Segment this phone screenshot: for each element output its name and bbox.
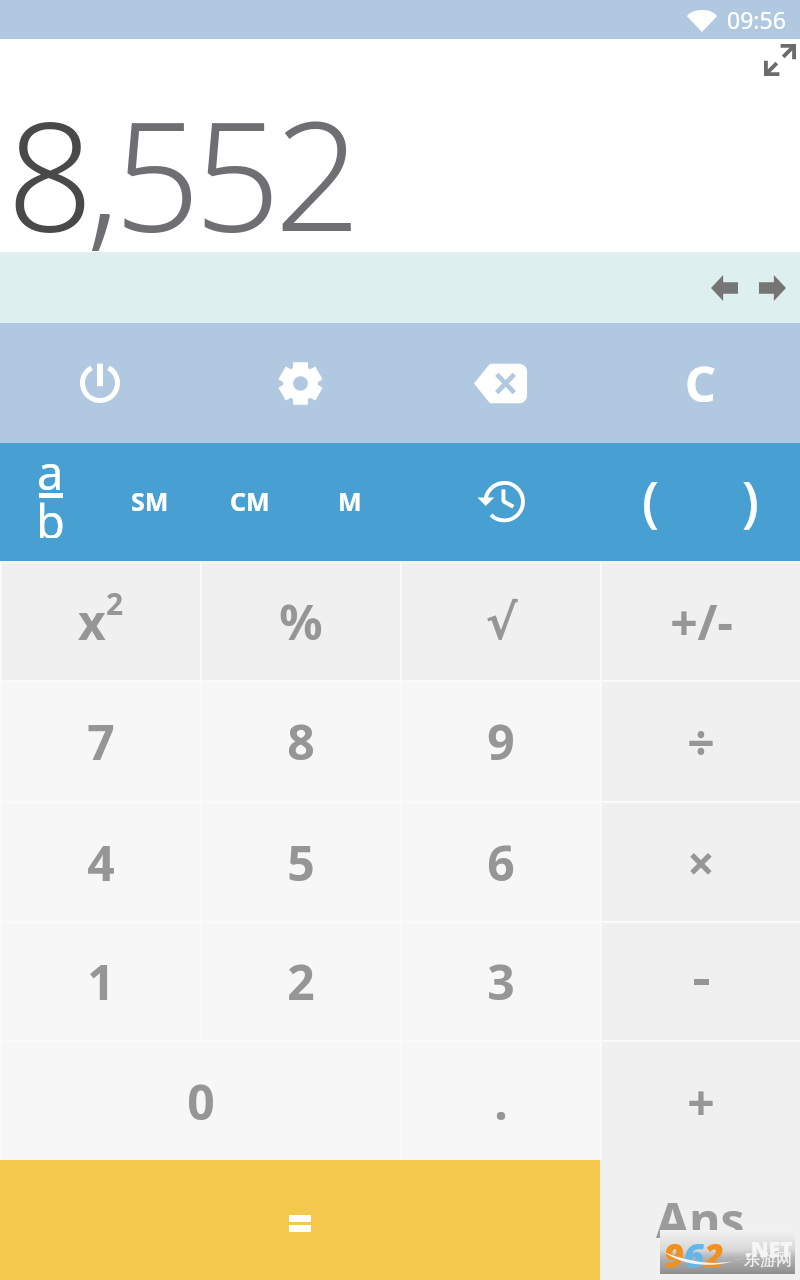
- staticText: M: [338, 484, 362, 518]
- button[interactable]: Equals: [0, 1160, 600, 1280]
- staticText: ×: [687, 830, 715, 895]
- button[interactable]: 4: [2, 803, 200, 921]
- staticText: 8: [7, 70, 86, 276]
- staticText: CM: [230, 484, 270, 518]
- button[interactable]: CM: [200, 443, 300, 561]
- staticText: (: [642, 463, 659, 537]
- button[interactable]: Expand: [756, 36, 800, 84]
- button[interactable]: 6: [402, 803, 600, 921]
- staticText: 4: [87, 830, 115, 895]
- staticText: 6: [487, 830, 515, 895]
- staticText: 3: [487, 949, 515, 1014]
- button[interactable]: √: [402, 563, 600, 680]
- staticText: 9: [664, 1232, 684, 1276]
- button[interactable]: Power: [0, 323, 200, 443]
- button[interactable]: +: [602, 1042, 800, 1160]
- button[interactable]: Move right: [746, 262, 798, 314]
- button[interactable]: ×: [602, 803, 800, 921]
- staticText: 9: [487, 709, 515, 774]
- staticText: √: [485, 594, 518, 650]
- button[interactable]: Open paren: [600, 443, 700, 561]
- staticText: ): [742, 463, 759, 537]
- staticText: 乐游网: [744, 1250, 792, 1270]
- button[interactable]: 8: [202, 682, 400, 801]
- staticText: C: [685, 351, 716, 416]
- staticText: 2: [704, 1232, 724, 1276]
- staticText: 6: [684, 1232, 704, 1276]
- staticText: .NET: [745, 1235, 793, 1264]
- button[interactable]: History: [450, 443, 550, 561]
- button[interactable]: Close paren: [700, 443, 800, 561]
- button[interactable]: M: [300, 443, 400, 561]
- button[interactable]: Clear: [600, 323, 800, 443]
- button[interactable]: 2: [202, 923, 400, 1040]
- staticText: .: [494, 1069, 508, 1134]
- staticText: 1: [87, 949, 115, 1014]
- staticText: +: [687, 1069, 715, 1134]
- staticText: 7: [87, 709, 115, 774]
- staticText: Ans: [656, 1187, 745, 1252]
- staticText: SM: [131, 484, 169, 518]
- button[interactable]: Minus: [602, 923, 800, 1040]
- staticText: %: [279, 589, 323, 654]
- button[interactable]: 5: [202, 803, 400, 921]
- button[interactable]: 0: [2, 1042, 400, 1160]
- staticText: 8: [287, 709, 315, 774]
- staticText: ,552: [86, 70, 355, 276]
- button[interactable]: +/-: [602, 563, 800, 680]
- staticText: 0: [187, 1069, 215, 1134]
- button[interactable]: x: [2, 563, 200, 680]
- button[interactable]: 1: [2, 923, 200, 1040]
- staticText: 2: [106, 583, 124, 624]
- button[interactable]: Settings: [200, 323, 400, 443]
- button[interactable]: .: [402, 1042, 600, 1160]
- button[interactable]: Backspace: [400, 323, 600, 443]
- staticText: 09:56: [727, 4, 786, 35]
- staticText: x: [78, 589, 106, 654]
- button[interactable]: Move left: [698, 262, 750, 314]
- staticText: 5: [287, 830, 315, 895]
- button[interactable]: Fraction: [0, 443, 100, 561]
- staticText: b: [36, 489, 65, 538]
- staticText: a: [37, 440, 64, 504]
- button[interactable]: 3: [402, 923, 600, 1040]
- button[interactable]: SM: [100, 443, 200, 561]
- staticText: 2: [287, 949, 315, 1014]
- button[interactable]: %: [202, 563, 400, 680]
- button[interactable]: ÷: [602, 682, 800, 801]
- staticText: ÷: [687, 709, 715, 774]
- button[interactable]: 9: [402, 682, 600, 801]
- button[interactable]: Ans: [600, 1160, 800, 1280]
- button[interactable]: 7: [2, 682, 200, 801]
- staticText: +/-: [670, 589, 733, 654]
